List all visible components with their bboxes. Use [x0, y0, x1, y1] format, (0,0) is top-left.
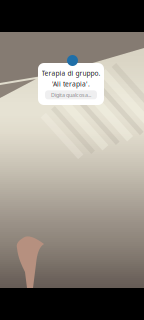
staticText: Terapia di gruppo.: [41, 69, 100, 77]
staticText: Digita qualcosa...: [51, 91, 91, 98]
staticText: 'Ali terapia'.: [52, 79, 90, 88]
